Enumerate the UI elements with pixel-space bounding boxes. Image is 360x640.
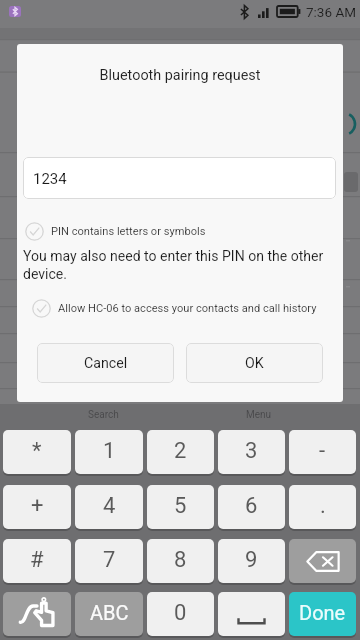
staticText: Bluetooth pairing request	[17, 67, 343, 84]
staticText: 6	[245, 493, 258, 519]
staticText: Menu	[246, 409, 272, 421]
button[interactable]: 8	[147, 539, 214, 583]
staticText: You may also need to enter this PIN on t…	[23, 248, 335, 282]
button[interactable]: Handwriting input	[3, 592, 71, 636]
staticText: .	[320, 493, 326, 519]
staticText: 1	[103, 438, 116, 464]
staticText: *	[32, 438, 42, 464]
staticText: 0	[174, 600, 187, 626]
staticText: Allow HC-06 to access your contacts and …	[58, 302, 317, 315]
button[interactable]: *	[3, 430, 71, 474]
staticText: OK	[245, 355, 264, 372]
staticText: Cancel	[84, 355, 128, 372]
staticText: 8	[174, 547, 187, 573]
staticText: 2	[174, 438, 187, 464]
button[interactable]: OK	[186, 343, 323, 383]
button[interactable]: 0	[147, 592, 214, 636]
button[interactable]: +	[3, 485, 71, 529]
button[interactable]: 3	[218, 430, 285, 474]
staticText: 9	[245, 547, 258, 573]
staticText: ABC	[90, 601, 129, 624]
staticText: 7	[103, 547, 116, 573]
button[interactable]: .	[289, 485, 356, 529]
button[interactable]: 9	[218, 539, 285, 583]
staticText: +	[31, 493, 44, 519]
button[interactable]: Done	[289, 592, 356, 636]
staticText: 4	[103, 493, 116, 519]
button[interactable]: -	[289, 430, 356, 474]
button[interactable]: ABC	[75, 592, 143, 636]
button[interactable]: PIN contains letters or symbols	[25, 221, 206, 241]
button[interactable]: #	[3, 539, 71, 583]
button[interactable]: 7	[75, 539, 143, 583]
button[interactable]: 4	[75, 485, 143, 529]
button[interactable]: Backspace	[289, 539, 356, 583]
staticText: 1234	[33, 170, 67, 188]
button[interactable]: 2	[147, 430, 214, 474]
button[interactable]: Space	[218, 592, 285, 636]
staticText: Search	[88, 409, 119, 421]
button[interactable]: Allow HC-06 to access your contacts and …	[32, 298, 317, 318]
button[interactable]: 1	[75, 430, 143, 474]
staticText: #	[30, 547, 44, 573]
staticText: Done	[299, 601, 346, 624]
button[interactable]: 1234	[23, 157, 336, 199]
button[interactable]: Cancel	[37, 343, 174, 383]
staticText: 7:36 AM	[306, 4, 356, 20]
button[interactable]: 6	[218, 485, 285, 529]
staticText: 5	[174, 493, 187, 519]
staticText: -	[319, 438, 326, 464]
staticText: PIN contains letters or symbols	[51, 225, 206, 238]
button[interactable]: 5	[147, 485, 214, 529]
staticText: 3	[245, 438, 258, 464]
